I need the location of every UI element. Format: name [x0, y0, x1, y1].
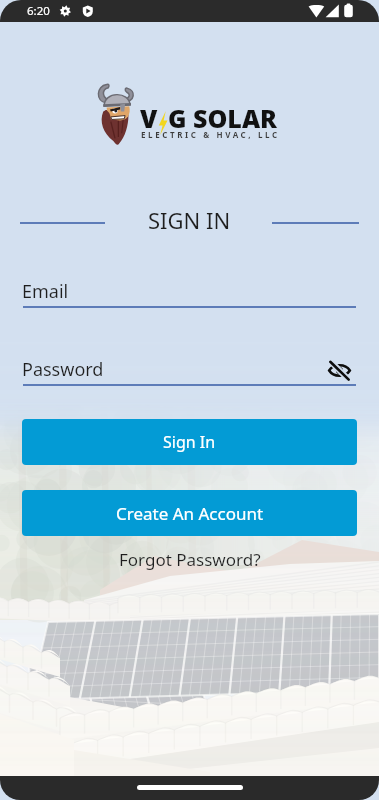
- button[interactable]: Forgot Password?: [110, 546, 270, 572]
- staticText: V: [140, 101, 158, 135]
- button[interactable]: Show password: [324, 355, 354, 385]
- staticText: Password: [22, 357, 104, 382]
- staticText: Sign In: [163, 431, 216, 453]
- staticText: SIGN IN: [148, 205, 231, 235]
- staticText: Create An Account: [116, 502, 264, 525]
- staticText: ELECTRIC & HVAC, LLC: [141, 129, 280, 140]
- staticText: Forgot Password?: [119, 548, 261, 571]
- button[interactable]: Sign In: [22, 419, 357, 465]
- button[interactable]: Create An Account: [22, 490, 357, 536]
- staticText: Email: [22, 279, 69, 304]
- staticText: 6:20: [27, 3, 50, 19]
- staticText: G SOLAR: [168, 101, 277, 135]
